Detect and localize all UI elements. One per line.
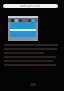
button[interactable]: example.com <box>3 4 58 8</box>
staticText: example.com <box>20 4 41 8</box>
button[interactable] <box>8 16 38 41</box>
